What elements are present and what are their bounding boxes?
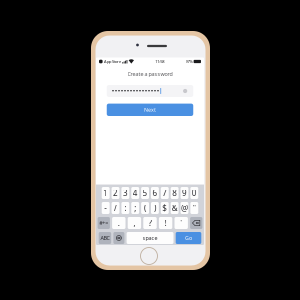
- button[interactable]: ,: [128, 217, 141, 229]
- staticText: /: [114, 203, 117, 213]
- staticText: space: [142, 234, 157, 242]
- button[interactable]: ;: [131, 202, 139, 214]
- staticText: #+=: [99, 219, 108, 227]
- button[interactable]: &: [171, 202, 179, 214]
- staticText: (: [144, 203, 146, 213]
- staticText: ": [193, 203, 196, 213]
- staticText: @: [181, 203, 188, 213]
- button[interactable]: ): [151, 202, 159, 214]
- button[interactable]: 1: [102, 187, 110, 199]
- staticText: Create a password: [127, 70, 172, 78]
- button[interactable]: space: [127, 232, 173, 244]
- button[interactable]: 8: [171, 187, 179, 199]
- staticText: ,: [133, 218, 135, 228]
- staticText: 7: [162, 188, 167, 198]
- button[interactable]: 7: [161, 187, 169, 199]
- staticText: 1: [103, 188, 108, 198]
- button[interactable]: Next: [107, 104, 193, 116]
- button[interactable]: Clear text: [182, 88, 188, 94]
- button[interactable]: Next keyboard: [113, 232, 124, 244]
- button[interactable]: 6: [151, 187, 159, 199]
- staticText: 9: [182, 188, 187, 198]
- staticText: ••••••••••••••••: [112, 87, 160, 95]
- button[interactable]: 4: [131, 187, 139, 199]
- button[interactable]: /: [112, 202, 119, 214]
- button[interactable]: ABC: [99, 232, 111, 244]
- staticText: ABC: [100, 234, 109, 242]
- button[interactable]: 0: [190, 187, 198, 199]
- button[interactable]: Go: [176, 232, 201, 244]
- button[interactable]: ?: [143, 217, 157, 229]
- staticText: &: [172, 203, 178, 213]
- staticText: !: [165, 218, 167, 228]
- button[interactable]: .: [112, 217, 125, 229]
- button[interactable]: (: [141, 202, 149, 214]
- staticText: 11:58: [155, 59, 164, 64]
- button[interactable]: -: [102, 202, 110, 214]
- staticText: 6: [152, 188, 157, 198]
- staticText: 5: [143, 188, 148, 198]
- button[interactable]: 9: [180, 187, 188, 199]
- button[interactable]: 3: [121, 187, 129, 199]
- staticText: Next: [144, 106, 156, 113]
- staticText: App Store: [103, 59, 121, 64]
- staticText: ): [154, 203, 156, 213]
- staticText: ': [180, 218, 182, 228]
- button[interactable]: $: [161, 202, 169, 214]
- staticText: 0: [192, 188, 197, 198]
- staticText: 2: [113, 188, 118, 198]
- button[interactable]: #+=: [98, 217, 110, 229]
- staticText: ;: [134, 203, 136, 213]
- button[interactable]: ': [174, 217, 188, 229]
- staticText: $: [162, 203, 167, 213]
- button[interactable]: 5: [141, 187, 149, 199]
- button[interactable]: Delete: [190, 217, 202, 229]
- staticText: -: [104, 203, 107, 213]
- button[interactable]: !: [159, 217, 172, 229]
- staticText: 97%: [186, 59, 193, 64]
- button[interactable]: 2: [112, 187, 119, 199]
- staticText: :: [124, 203, 126, 213]
- staticText: .: [118, 218, 120, 228]
- staticText: 4: [133, 188, 138, 198]
- staticText: 3: [123, 188, 128, 198]
- button[interactable]: :: [121, 202, 129, 214]
- staticText: ?: [148, 218, 151, 228]
- button[interactable]: @: [180, 202, 188, 214]
- staticText: 8: [172, 188, 177, 198]
- staticText: Go: [185, 234, 192, 242]
- button[interactable]: ": [190, 202, 198, 214]
